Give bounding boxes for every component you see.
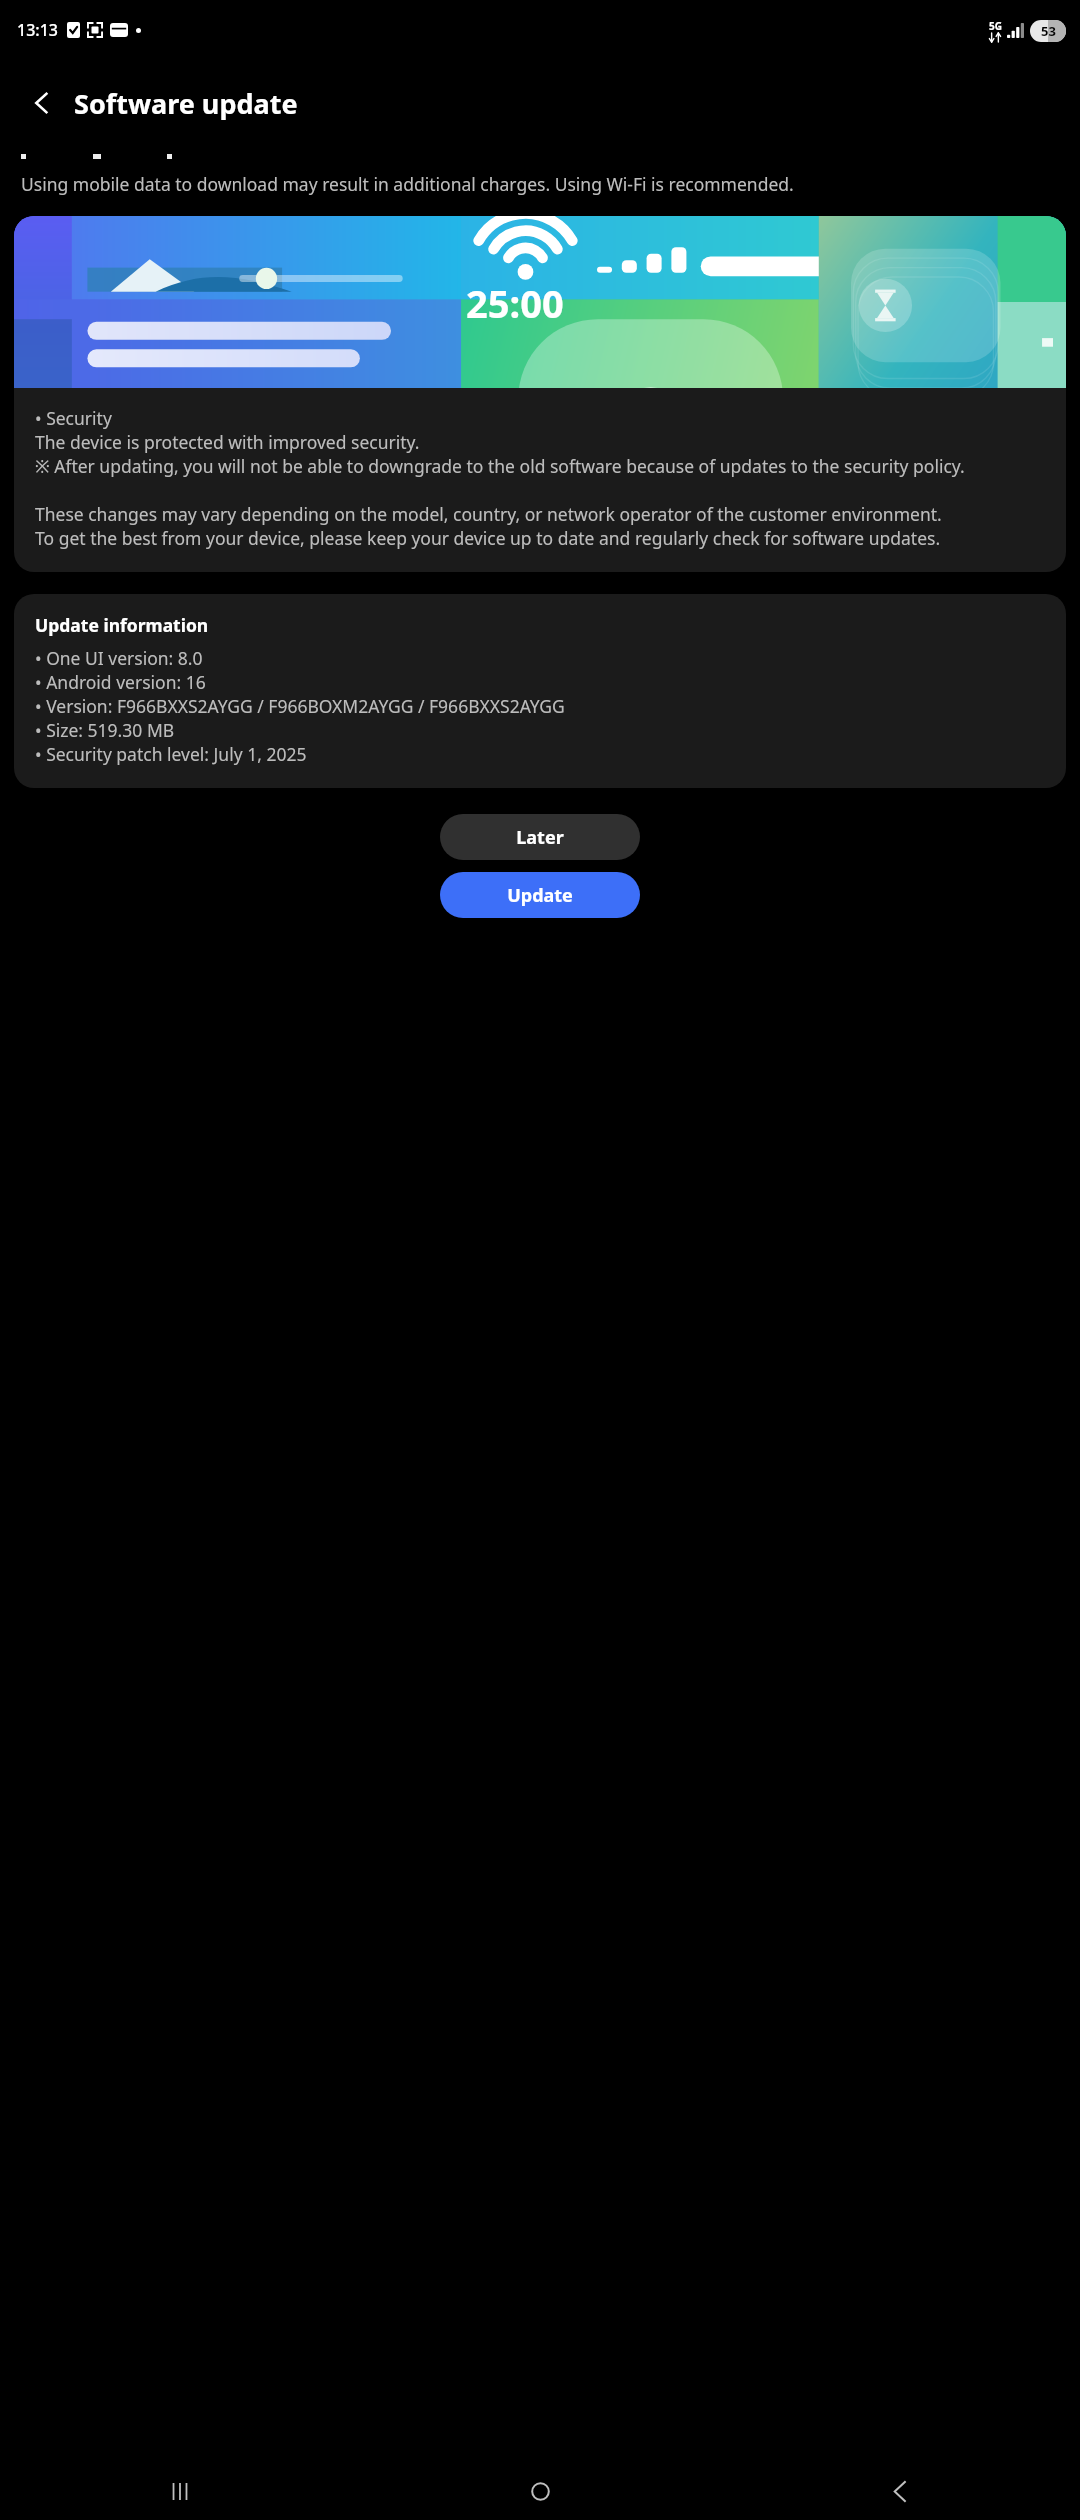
- staticText: • Security patch level: July 1, 2025: [35, 742, 307, 766]
- staticText: 25:00: [466, 277, 564, 329]
- staticText: Update: [507, 883, 573, 908]
- staticText: • Version: F966BXXS2AYGG / F966BOXM2AYGG…: [35, 694, 565, 718]
- staticText: • Android version: 16: [35, 670, 206, 694]
- staticText: Using mobile data to download may result…: [21, 172, 794, 196]
- staticText: • One UI version: 8.0: [35, 646, 203, 670]
- staticText: ※ After updating, you will not be able t…: [35, 454, 965, 478]
- button[interactable]: Recents: [0, 2462, 360, 2520]
- staticText: The device is protected with improved se…: [35, 430, 420, 454]
- button[interactable]: Home: [360, 2462, 720, 2520]
- staticText: Update information: [35, 613, 209, 637]
- staticText: 13:13: [17, 19, 58, 41]
- staticText: Software update: [74, 85, 298, 122]
- button[interactable]: Back: [14, 75, 70, 131]
- staticText: These changes may vary depending on the …: [35, 502, 942, 526]
- staticText: Later: [516, 825, 564, 850]
- staticText: • Security: [35, 406, 112, 430]
- staticText: 53: [1041, 22, 1056, 40]
- button[interactable]: Update: [440, 872, 640, 918]
- staticText: To get the best from your device, please…: [35, 526, 941, 550]
- staticText: 5G: [989, 19, 1002, 33]
- button[interactable]: Back: [720, 2462, 1080, 2520]
- button[interactable]: Later: [440, 814, 640, 860]
- staticText: • Size: 519.30 MB: [35, 718, 175, 742]
